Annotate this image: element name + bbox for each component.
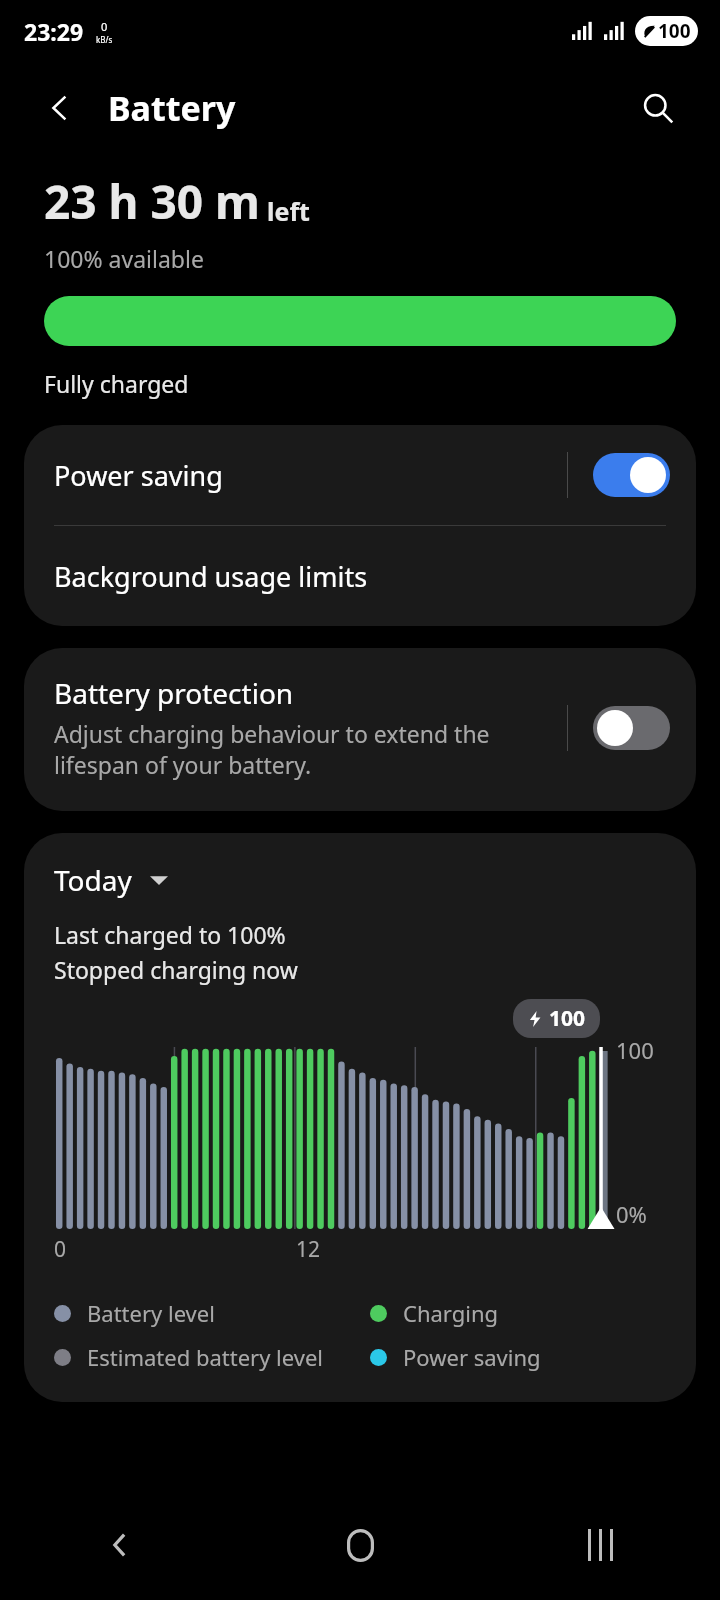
staticText: kB/s bbox=[96, 34, 113, 45]
staticText: Power saving bbox=[403, 1342, 541, 1372]
button[interactable]: Back bbox=[0, 1490, 240, 1600]
staticText: Charging bbox=[403, 1298, 499, 1328]
button[interactable]: Off bbox=[593, 706, 670, 750]
staticText: Estimated battery level bbox=[87, 1342, 323, 1372]
staticText: 0% bbox=[616, 1199, 647, 1229]
button[interactable]: Recents bbox=[480, 1490, 720, 1600]
staticText: 0 bbox=[54, 1235, 67, 1264]
staticText: 100 bbox=[616, 1035, 654, 1065]
staticText: Stopped charging now bbox=[54, 954, 298, 985]
staticText: 100 bbox=[549, 1004, 586, 1033]
staticText: Battery protection bbox=[54, 674, 294, 712]
staticText: 0 bbox=[101, 19, 108, 34]
button[interactable]: Today bbox=[54, 861, 168, 899]
button[interactable]: Search bbox=[632, 82, 684, 134]
button[interactable]: Back bbox=[36, 84, 84, 132]
staticText: 100 bbox=[658, 18, 691, 44]
staticText: Background usage limits bbox=[54, 558, 368, 595]
button[interactable]: Battery protection bbox=[24, 648, 696, 811]
staticText: Battery bbox=[108, 85, 236, 131]
staticText: Fully charged bbox=[44, 368, 189, 399]
staticText: Power saving bbox=[54, 457, 223, 494]
button[interactable]: Background usage limits bbox=[24, 526, 696, 626]
staticText: Last charged to 100% bbox=[54, 919, 286, 950]
staticText: left bbox=[267, 194, 310, 228]
staticText: 23 h 30 m bbox=[44, 170, 260, 233]
staticText: Adjust charging behaviour to extend the … bbox=[54, 718, 490, 781]
button[interactable]: Power saving bbox=[24, 425, 696, 525]
staticText: Battery level bbox=[87, 1298, 215, 1328]
staticText: 12 bbox=[296, 1235, 321, 1264]
button[interactable]: On bbox=[593, 453, 670, 497]
button[interactable]: Home bbox=[240, 1490, 480, 1600]
staticText: 23:29 bbox=[24, 16, 84, 47]
staticText: Today bbox=[54, 861, 132, 899]
staticText: 100% available bbox=[44, 243, 204, 274]
